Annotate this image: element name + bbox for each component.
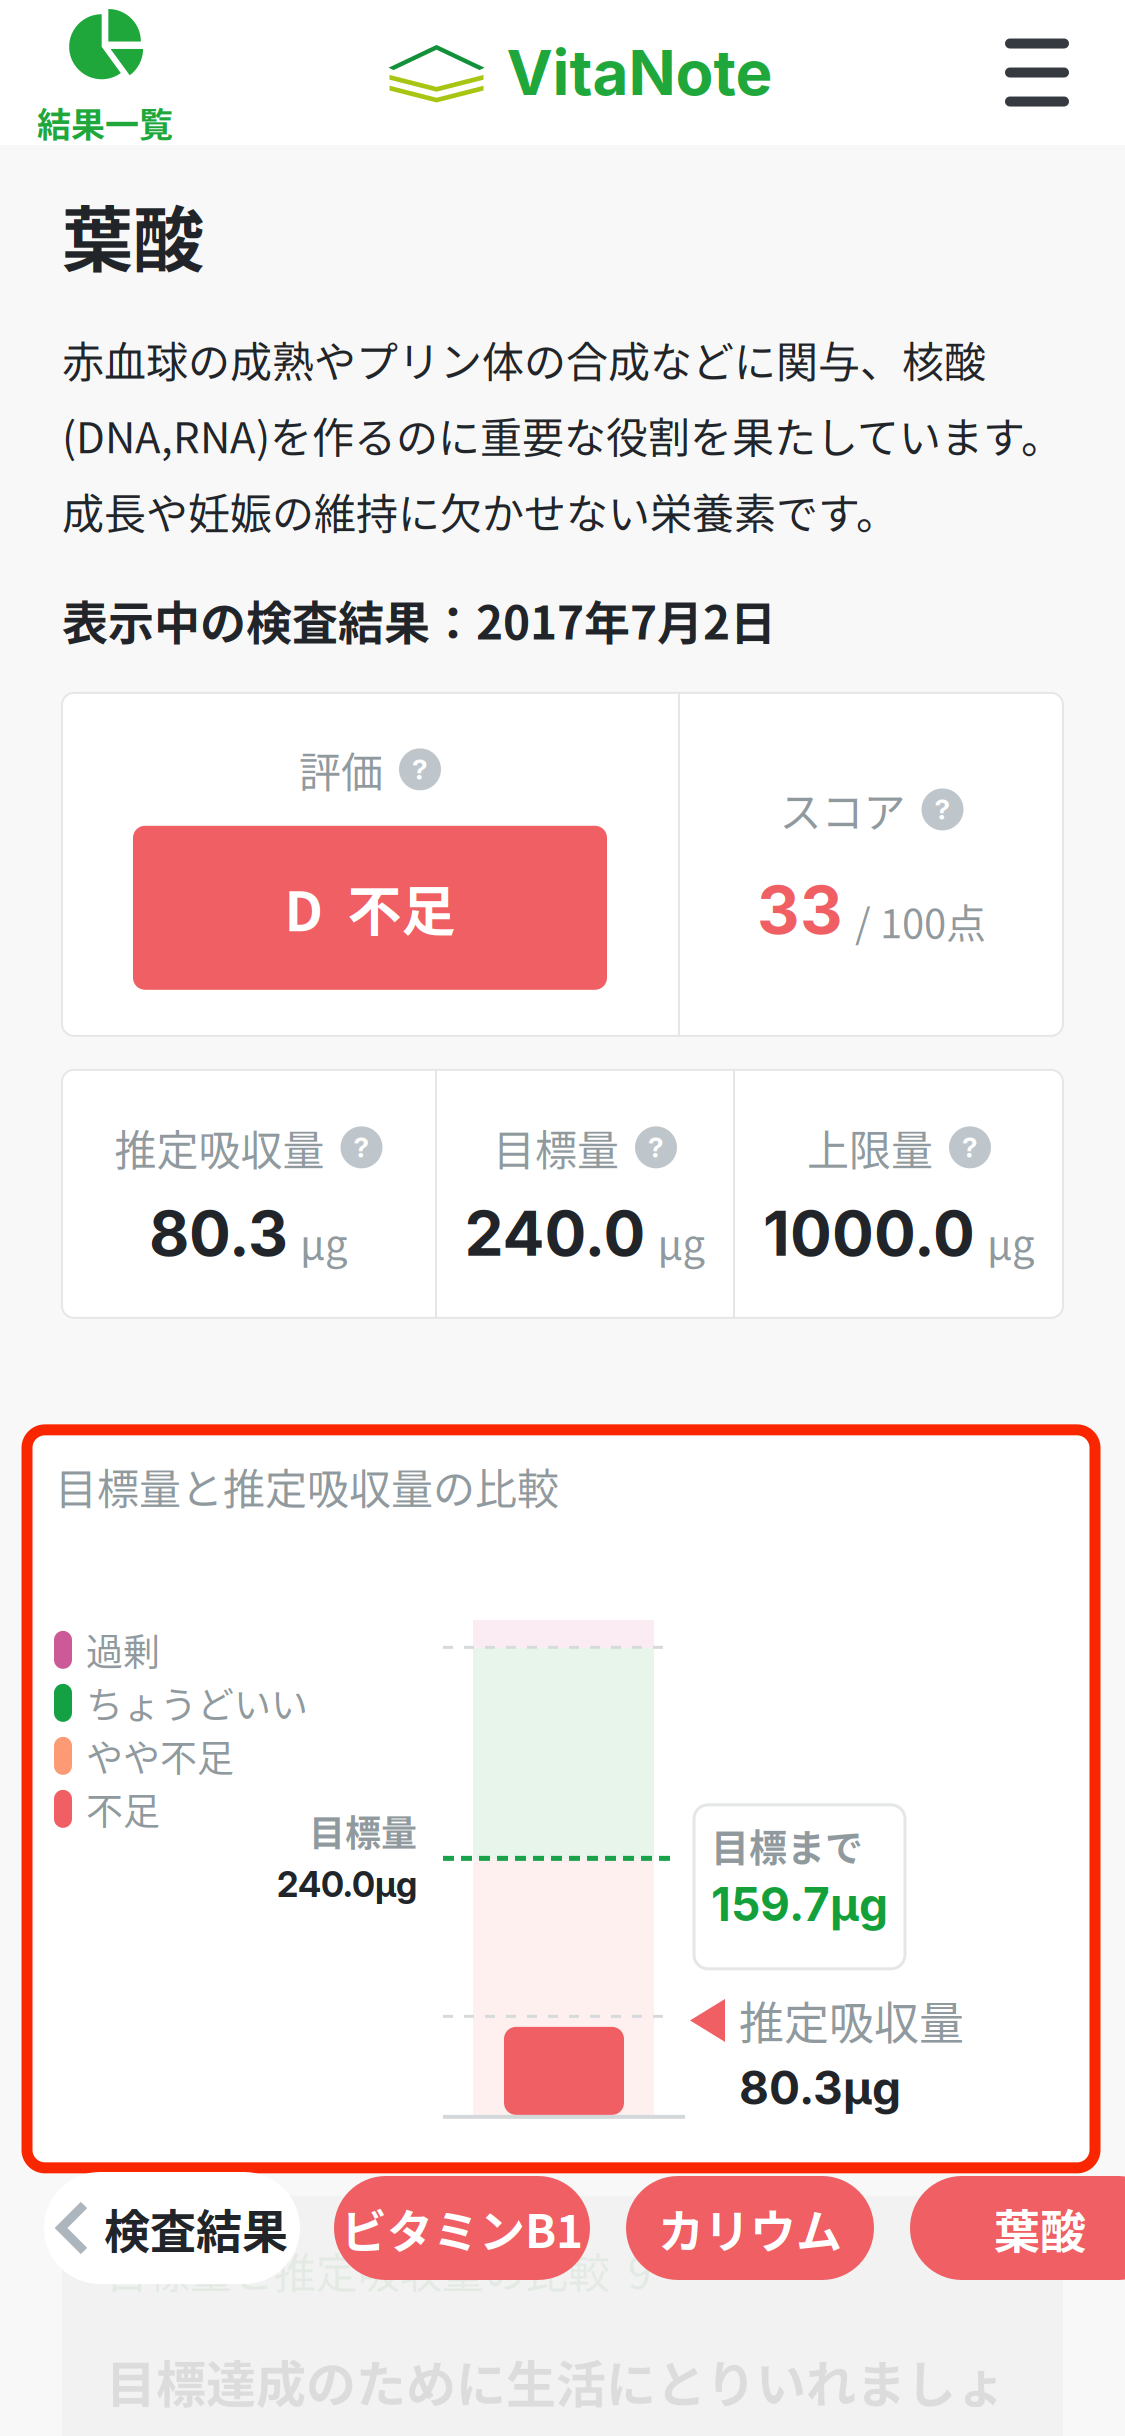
staticText: 不足 (86, 1782, 160, 1836)
staticText: / 100点 (855, 892, 986, 950)
staticText: 成長や妊娠の維持に欠かせない栄養素です。 (62, 480, 898, 541)
staticText: 目標達成のために生活にとりいれましょ (106, 2345, 1006, 2417)
staticText: ちょうどいい (86, 1676, 308, 1730)
staticText: 赤血球の成熟やプリン体の合成などに関与、核酸 (62, 329, 986, 390)
staticText: µg (987, 1213, 1035, 1271)
staticText: 上限量 (807, 1117, 933, 1178)
button[interactable]: カリウム (626, 2176, 874, 2280)
staticText: 1000.0 (763, 1196, 975, 1271)
staticText: 目標量 (309, 1805, 417, 1857)
staticText: スコア (779, 779, 905, 840)
staticText: 240.0 (464, 1196, 645, 1271)
staticText: 結果一覧 (37, 98, 173, 147)
staticText: µg (657, 1213, 705, 1271)
staticText: 33 (757, 870, 843, 950)
button[interactable]: Menu (949, 0, 1125, 145)
staticText: (DNA,RNA)を作るのに重要な役割を果たしています。 (62, 405, 1063, 465)
staticText: ? (648, 1131, 664, 1164)
staticText: 表示中の検査結果：2017年7月2日 (62, 586, 776, 653)
staticText: 目標量 (493, 1117, 619, 1178)
staticText: 目標まで (711, 1817, 863, 1872)
staticText: 80.3 (149, 1196, 288, 1271)
staticText: 評価 (299, 739, 383, 800)
staticText: µg (300, 1213, 348, 1271)
staticText: 240.0µg (277, 1863, 417, 1905)
staticText: ? (962, 1131, 978, 1164)
staticText: やや不足 (86, 1729, 234, 1783)
staticText: 159.7µg (711, 1876, 888, 1932)
staticText: 目標量と推定吸収量の比較 (55, 1456, 559, 1517)
staticText: 80.3µg (739, 2060, 901, 2116)
staticText: ? (934, 793, 950, 826)
staticText: カリウム (658, 2195, 842, 2261)
staticText: ? (412, 753, 428, 786)
staticText: 葉酸 (62, 183, 204, 286)
staticText: ? (353, 1131, 369, 1164)
staticText: 過剰 (86, 1623, 160, 1677)
staticText: 葉酸 (994, 2195, 1086, 2261)
staticText: 検査結果 (104, 2195, 288, 2261)
button[interactable]: 葉酸 (910, 2176, 1125, 2280)
staticText: 推定吸収量 (114, 1117, 324, 1178)
staticText: ビタミンB1 (341, 2195, 583, 2261)
button[interactable]: 検査結果 (44, 2172, 300, 2284)
staticText: D 不足 (284, 869, 455, 947)
staticText: 推定吸収量 (739, 1988, 964, 2053)
staticText: 目標量と推定吸収量の比較 9 (106, 2240, 651, 2301)
button[interactable]: ビタミンB1 (334, 2176, 590, 2280)
staticText: VitaNote (506, 35, 772, 110)
button[interactable]: 結果一覧 (0, 0, 210, 150)
